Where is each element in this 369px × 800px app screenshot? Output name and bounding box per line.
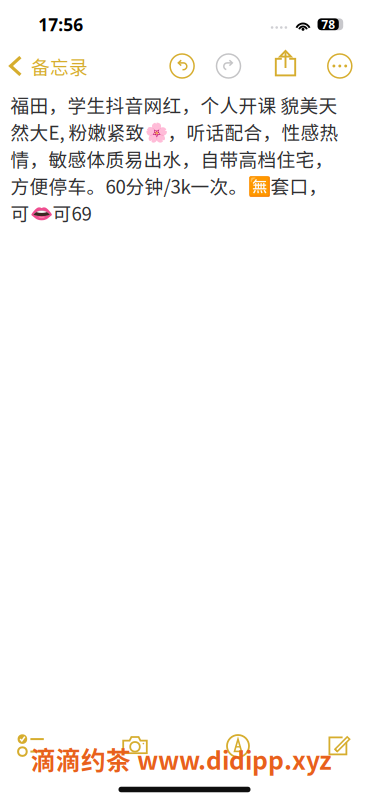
button[interactable]: New note — [312, 724, 368, 768]
button[interactable]: 备忘录 — [0, 44, 110, 88]
button[interactable]: Markup — [210, 724, 266, 768]
button[interactable]: Undo — [170, 54, 194, 78]
staticText: 备忘录 — [31, 52, 88, 79]
button[interactable]: More options — [328, 54, 352, 78]
button[interactable]: Checklist — [3, 723, 59, 767]
staticText: 78 — [321, 16, 335, 32]
button[interactable]: Share — [274, 50, 297, 77]
staticText: 滴滴约茶 www.didipp.xyz — [31, 741, 332, 777]
button[interactable]: Camera — [107, 723, 163, 767]
button[interactable]: Redo — [216, 54, 240, 78]
staticText: 17:56 — [38, 13, 83, 36]
staticText: 福田，学生抖音网红，个人开课 貌美天然大E, 粉嫩紧致🌸，听话配合，性感热情，敏… — [10, 91, 338, 226]
